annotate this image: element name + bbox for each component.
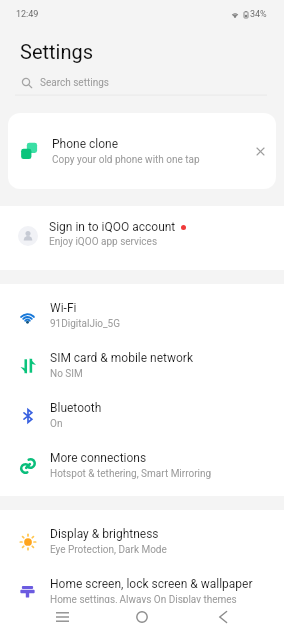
staticText: Bluetooth [50,401,102,415]
staticText: Wi-Fi [50,301,77,315]
staticText: On [50,418,63,430]
staticText: Hotspot & tethering, Smart Mirroring [50,468,212,480]
staticText: Eye Protection, Dark Mode [50,544,167,556]
staticText: Home settings, Always On Display themes [50,594,237,606]
button[interactable]: Display & brightness [0,516,284,566]
button[interactable]: Search settings [0,70,284,96]
staticText: More connections [50,451,147,465]
staticText: Phone clone [52,137,119,151]
staticText: Settings [20,40,94,63]
button[interactable]: Recent apps [44,603,80,630]
button[interactable]: Wi-Fi [0,290,284,340]
staticText: Display & brightness [50,527,159,541]
button[interactable]: Phone clone [8,113,276,189]
staticText: Search settings [40,77,109,89]
staticText: No SIM [50,368,83,380]
button[interactable]: Home screen, lock screen & wallpaper [0,566,284,616]
button[interactable]: SIM card & mobile network [0,340,284,390]
button[interactable]: Back [205,603,241,630]
button[interactable]: Sign in to iQOO account [0,206,284,270]
staticText: Home screen, lock screen & wallpaper [50,577,253,591]
button[interactable]: Bluetooth [0,390,284,440]
staticText: Sign in to iQOO account [49,220,176,234]
staticText: SIM card & mobile network [50,351,193,365]
staticText: 91DigitalJio_5G [50,318,121,330]
staticText: 12:49 [16,9,39,20]
staticText: 34% [250,9,267,20]
staticText: Copy your old phone with one tap [52,154,200,166]
button[interactable]: Home [124,603,160,630]
button[interactable]: More connections [0,440,284,490]
button[interactable]: Close [252,143,268,159]
staticText: Enjoy iQOO app services [49,236,158,248]
